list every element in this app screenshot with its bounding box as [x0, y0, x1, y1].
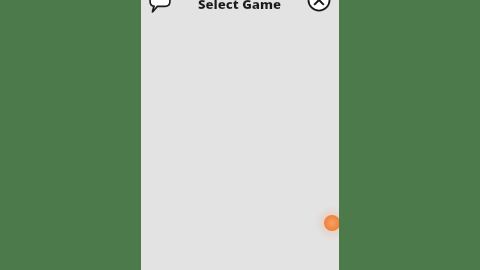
button[interactable]: Close [304, 0, 334, 11]
button[interactable]: Loading indicator [315, 206, 339, 240]
staticText: Select Game [198, 0, 281, 13]
button[interactable]: Back [146, 0, 174, 13]
